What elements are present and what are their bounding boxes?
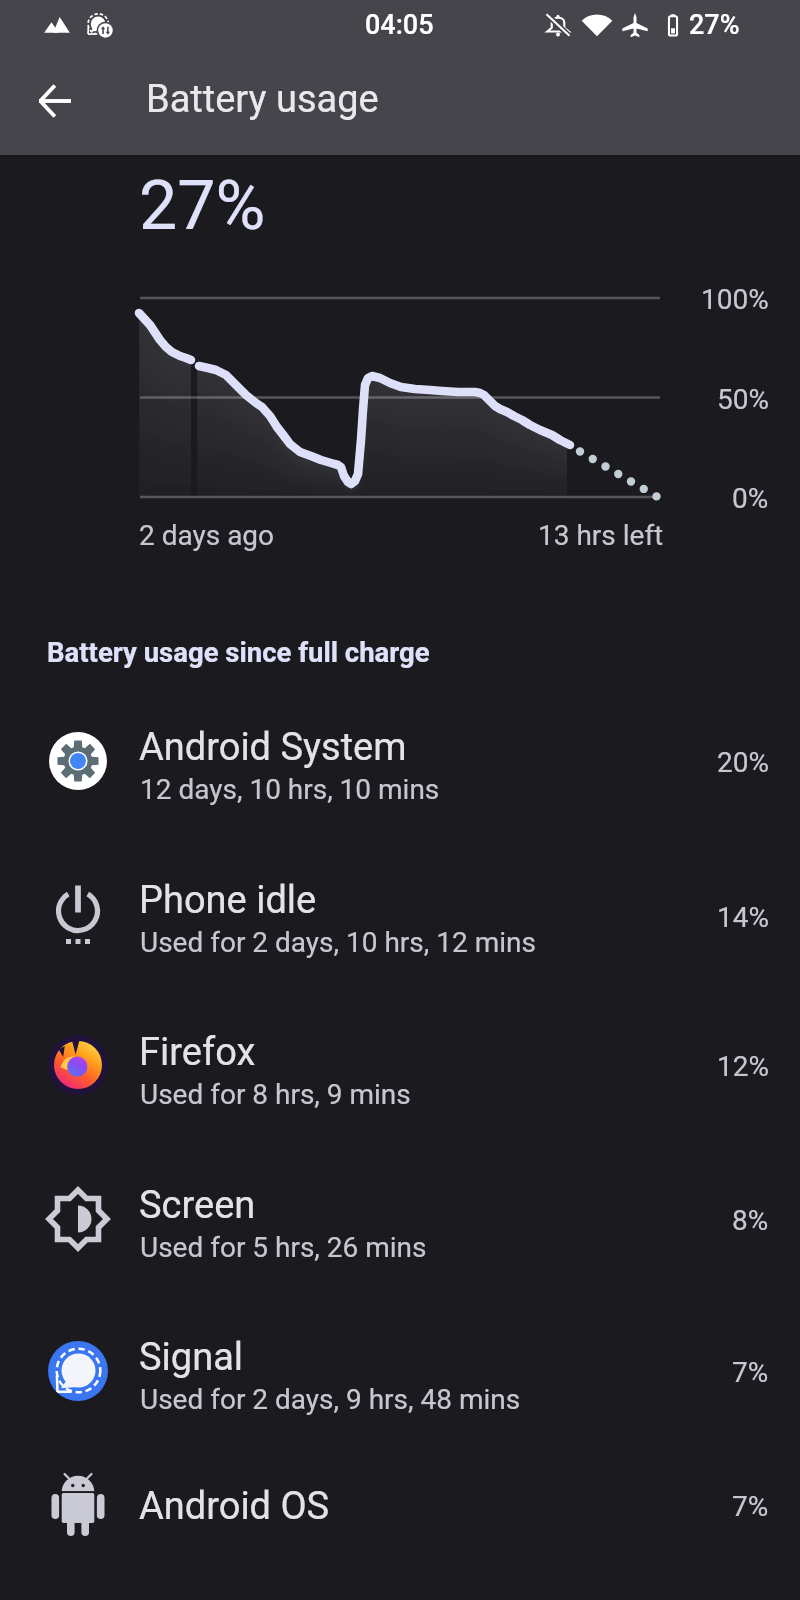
staticText: Battery usage since full charge (47, 636, 430, 668)
staticText: Android OS (139, 1484, 330, 1529)
button[interactable]: Phone idle (0, 852, 800, 1004)
staticText: 27% (689, 9, 740, 41)
staticText: 50% (717, 383, 769, 416)
staticText: Used for 2 days, 10 hrs, 12 mins (140, 926, 536, 959)
button[interactable]: Android System (0, 700, 800, 852)
button[interactable]: Signal (0, 1308, 800, 1460)
staticText: Used for 5 hrs, 26 mins (140, 1231, 427, 1264)
button[interactable]: Back (19, 65, 91, 137)
staticText: 7% (732, 1490, 769, 1523)
staticText: Signal (139, 1335, 244, 1380)
staticText: 2 days ago (139, 519, 275, 552)
button[interactable]: Firefox (0, 1004, 800, 1156)
staticText: 7% (732, 1356, 769, 1389)
staticText: 04:05 (365, 9, 434, 41)
staticText: Used for 2 days, 9 hrs, 48 mins (140, 1383, 521, 1416)
staticText: Firefox (139, 1030, 256, 1075)
staticText: Used for 8 hrs, 9 mins (140, 1078, 411, 1111)
staticText: 27% (139, 166, 266, 246)
staticText: 100% (701, 283, 769, 316)
staticText: 13 hrs left (538, 519, 664, 552)
staticText: 12% (717, 1050, 769, 1083)
staticText: 20% (717, 746, 769, 779)
staticText: Android System (139, 725, 407, 770)
staticText: Phone idle (139, 878, 317, 923)
staticText: Screen (139, 1183, 256, 1228)
button[interactable]: Android OS (0, 1460, 800, 1600)
staticText: 8% (732, 1204, 769, 1237)
button[interactable]: Screen (0, 1156, 800, 1308)
staticText: 0% (732, 482, 769, 515)
staticText: 12 days, 10 hrs, 10 mins (140, 773, 440, 806)
staticText: 14% (717, 901, 769, 934)
staticText: Battery usage (146, 77, 379, 122)
